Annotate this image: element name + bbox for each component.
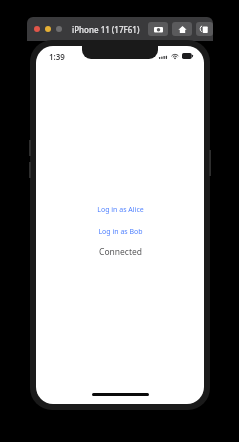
staticText: iPhone 11 (17F61) [72,24,140,35]
button[interactable]: Home [172,22,192,36]
staticText: Log in as Bob [98,227,143,237]
staticText: 1:39 [49,51,65,62]
button[interactable]: Log in as Bob [94,226,147,238]
staticText: Connected [99,246,142,258]
staticText: Log in as Alice [97,205,144,215]
button[interactable]: Screenshot [148,22,168,36]
button[interactable]: Zoom [56,26,62,32]
button[interactable]: Log in as Alice [93,204,148,216]
button[interactable]: Rotate [196,22,213,36]
button[interactable]: Minimize [45,26,51,32]
button[interactable]: Close [34,26,40,32]
